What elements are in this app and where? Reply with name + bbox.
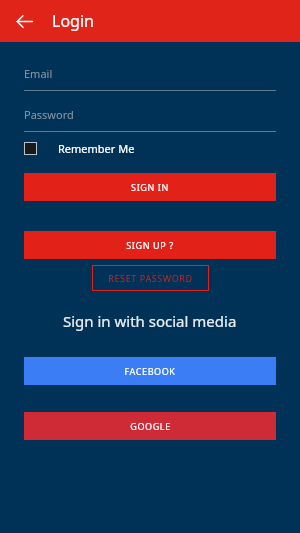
staticText: GOOGLE	[130, 420, 171, 432]
button[interactable]: SIGN UP ?	[24, 231, 276, 259]
button[interactable]: RESET PASSWORD	[92, 265, 209, 291]
staticText: Login	[52, 10, 94, 32]
staticText: Remember Me	[58, 141, 135, 156]
staticText: SIGN IN	[131, 181, 169, 193]
button[interactable]: Back	[10, 7, 38, 35]
button[interactable]: Password	[24, 107, 276, 132]
staticText: RESET PASSWORD	[108, 272, 193, 284]
staticText: Sign in with social media	[63, 311, 237, 331]
button[interactable]: GOOGLE	[24, 412, 276, 440]
button[interactable]: Email	[24, 66, 276, 91]
button[interactable]: Remember Me	[24, 141, 135, 156]
button[interactable]: FACEBOOK	[24, 357, 276, 385]
staticText: FACEBOOK	[124, 365, 176, 377]
button[interactable]: SIGN IN	[24, 173, 276, 201]
staticText: SIGN UP ?	[126, 239, 174, 251]
staticText: Email	[24, 66, 53, 81]
staticText: Password	[24, 107, 74, 122]
